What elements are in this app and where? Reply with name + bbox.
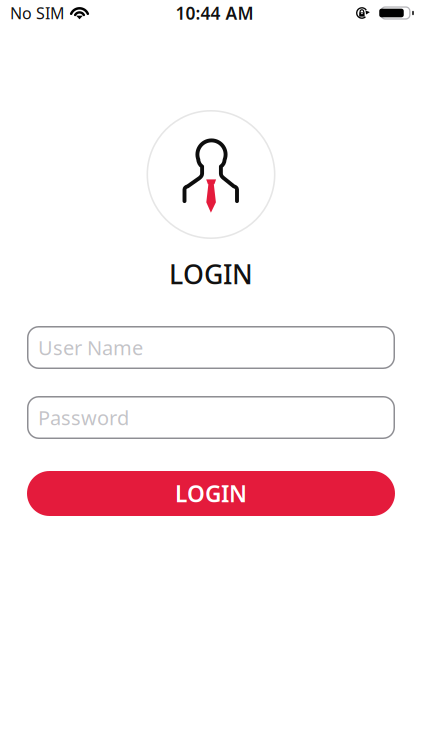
staticText: LOGIN xyxy=(169,256,253,292)
staticText: No SIM xyxy=(10,2,65,24)
staticText: 10:44 AM xyxy=(175,1,253,24)
button[interactable]: LOGIN xyxy=(27,471,395,516)
staticText: User Name xyxy=(38,334,143,361)
staticText: Password xyxy=(38,404,129,431)
staticText: LOGIN xyxy=(175,478,247,508)
